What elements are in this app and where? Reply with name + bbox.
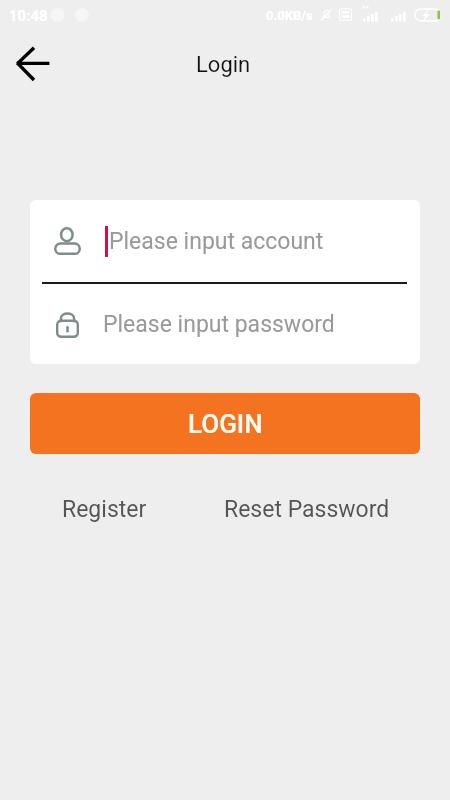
button[interactable]: Please input password [30,284,420,364]
button[interactable]: Reset Password [208,489,406,529]
button[interactable]: Please input account [30,200,420,282]
staticText: 0.0KB/s [266,8,313,23]
staticText: Reset Password [224,496,390,523]
staticText: Please input password [103,311,335,338]
button[interactable]: LOGIN [30,393,420,454]
staticText: Login [196,52,251,78]
staticText: Register [62,496,147,523]
staticText: LOGIN [188,409,263,439]
staticText: Please input account [109,228,324,255]
staticText: 10:48 [9,7,48,25]
button[interactable]: Register [46,489,163,529]
button[interactable]: Back [9,40,57,88]
